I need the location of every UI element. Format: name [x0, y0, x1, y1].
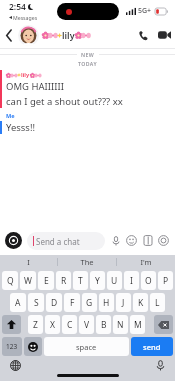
- button[interactable]: Dictation: [153, 358, 167, 372]
- button[interactable]: H: [99, 293, 114, 312]
- staticText: J: [122, 297, 125, 309]
- staticText: S: [34, 297, 39, 309]
- button[interactable]: Voice note: [109, 234, 122, 247]
- staticText: lily: [21, 71, 30, 79]
- staticText: I: [27, 257, 30, 267]
- button[interactable]: D: [46, 293, 62, 312]
- staticText: W: [24, 275, 32, 287]
- staticText: O: [145, 275, 152, 287]
- button[interactable]: Q: [2, 271, 18, 290]
- button[interactable]: P: [158, 271, 173, 290]
- button[interactable]: C: [62, 315, 77, 334]
- staticText: Me: [6, 112, 15, 120]
- button[interactable]: I: [124, 271, 139, 290]
- staticText: Messages: [13, 14, 38, 21]
- button[interactable]: Emoji: [24, 337, 42, 356]
- button[interactable]: Backspace: [154, 315, 173, 334]
- staticText: OMG HAIIIIII: [6, 80, 64, 93]
- staticText: TODAY: [78, 60, 97, 67]
- staticText: I'm: [140, 257, 152, 267]
- button[interactable]: M: [130, 315, 145, 334]
- button[interactable]: Video call: [153, 22, 175, 48]
- staticText: Y: [95, 275, 100, 287]
- button[interactable]: T: [73, 271, 88, 290]
- staticText: 2:54: [9, 1, 26, 13]
- staticText: N: [117, 319, 124, 331]
- staticText: M: [134, 319, 142, 331]
- staticText: NEW: [81, 51, 95, 58]
- staticText: U: [111, 275, 118, 287]
- button[interactable]: J: [116, 293, 131, 312]
- button[interactable]: I'm: [117, 255, 175, 269]
- staticText: T: [78, 275, 83, 287]
- button[interactable]: Stickers: [125, 234, 138, 247]
- staticText: H: [103, 297, 110, 309]
- button[interactable]: R: [56, 271, 71, 290]
- button[interactable]: space: [44, 337, 129, 356]
- button[interactable]: Send a chat: [27, 232, 105, 250]
- button[interactable]: U: [107, 271, 122, 290]
- button[interactable]: X: [45, 315, 60, 334]
- button[interactable]: F: [64, 293, 80, 312]
- button[interactable]: N: [113, 315, 128, 334]
- staticText: 5G+: [138, 6, 152, 16]
- staticText: X: [50, 319, 55, 331]
- staticText: lily: [62, 29, 75, 41]
- button[interactable]: Change keyboard: [8, 358, 22, 372]
- staticText: C: [67, 319, 73, 331]
- staticText: I: [130, 275, 133, 287]
- staticText: The: [80, 257, 94, 267]
- button[interactable]: Me: [0, 112, 175, 134]
- button[interactable]: G: [82, 293, 97, 312]
- staticText: E: [44, 275, 49, 287]
- staticText: A: [15, 297, 21, 309]
- button[interactable]: 123: [2, 337, 22, 356]
- button[interactable]: send: [131, 337, 173, 356]
- button[interactable]: E: [38, 271, 54, 290]
- staticText: send: [143, 342, 161, 352]
- staticText: can I get a shout out??? xx: [6, 95, 123, 108]
- button[interactable]: Back: [0, 22, 18, 48]
- staticText: F: [70, 297, 75, 309]
- button[interactable]: K: [133, 293, 148, 312]
- button[interactable]: Y: [90, 271, 105, 290]
- staticText: Q: [7, 275, 14, 287]
- staticText: 123: [6, 342, 18, 351]
- button[interactable]: Saved notes: [141, 234, 154, 247]
- staticText: P: [163, 275, 169, 287]
- staticText: Send a chat: [36, 236, 80, 247]
- staticText: Yesss!!: [6, 121, 36, 134]
- button[interactable]: S: [28, 293, 44, 312]
- staticText: L: [155, 297, 160, 309]
- button[interactable]: Call: [133, 22, 153, 48]
- staticText: B: [101, 319, 107, 331]
- staticText: K: [138, 297, 144, 309]
- button[interactable]: Scan: [157, 234, 170, 247]
- button[interactable]: I: [0, 255, 57, 269]
- button[interactable]: Z: [28, 315, 43, 334]
- staticText: space: [76, 342, 97, 352]
- button[interactable]: The: [58, 255, 116, 269]
- button[interactable]: lily: [0, 70, 175, 108]
- button[interactable]: Camera: [5, 232, 22, 249]
- staticText: D: [51, 297, 58, 309]
- staticText: V: [84, 319, 90, 331]
- button[interactable]: A: [10, 293, 26, 312]
- button[interactable]: O: [141, 271, 156, 290]
- staticText: Z: [33, 319, 38, 331]
- button[interactable]: Shift: [2, 315, 21, 334]
- button[interactable]: Profile: [18, 25, 39, 46]
- staticText: R: [61, 275, 67, 287]
- button[interactable]: B: [96, 315, 111, 334]
- staticText: G: [86, 297, 93, 309]
- button[interactable]: L: [150, 293, 165, 312]
- button[interactable]: V: [79, 315, 94, 334]
- button[interactable]: W: [20, 271, 36, 290]
